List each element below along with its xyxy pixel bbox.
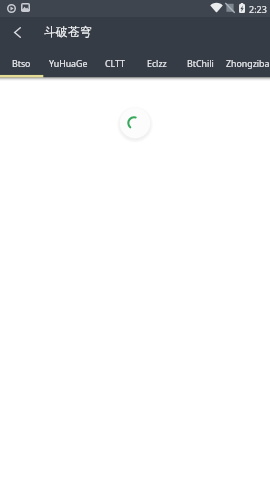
staticText: Eclzz: [147, 58, 167, 70]
staticText: CLTT: [105, 58, 125, 70]
staticText: 斗破苍穹: [44, 24, 92, 39]
staticText: Btso: [12, 58, 31, 70]
staticText: 2:23: [249, 3, 267, 15]
button[interactable]: BtChili: [177, 48, 224, 77]
staticText: BtChili: [187, 58, 214, 70]
button[interactable]: YuHuaGe: [43, 48, 93, 77]
button[interactable]: Btso: [0, 48, 43, 77]
staticText: Zhongziba: [226, 58, 270, 70]
staticText: YuHuaGe: [49, 58, 88, 70]
button[interactable]: Eclzz: [136, 48, 178, 77]
button[interactable]: CLTT: [96, 48, 133, 77]
button[interactable]: Back: [0, 17, 35, 48]
button[interactable]: Zhongziba: [222, 48, 270, 77]
